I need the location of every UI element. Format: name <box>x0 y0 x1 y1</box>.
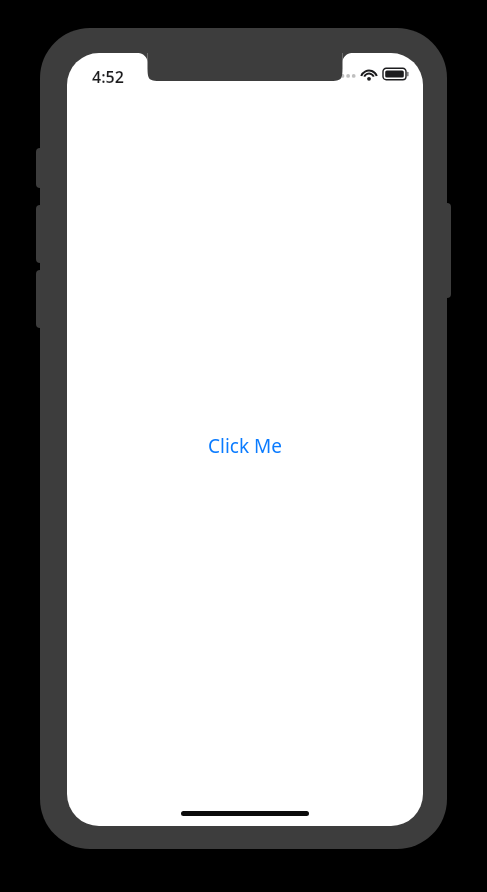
staticText: 4:52 <box>92 66 124 88</box>
other: Home indicator <box>181 811 309 816</box>
button[interactable]: Click Me <box>202 431 288 461</box>
staticText: Click Me <box>208 433 282 459</box>
